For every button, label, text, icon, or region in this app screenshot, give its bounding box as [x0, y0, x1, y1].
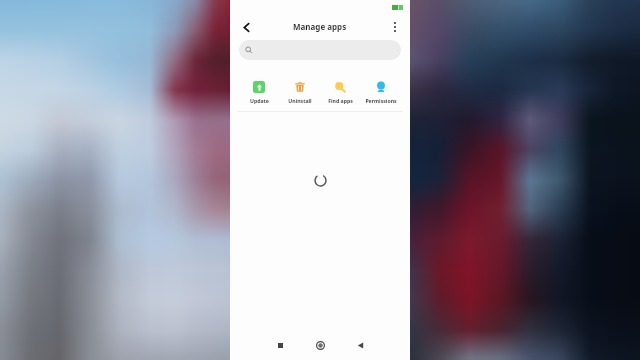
button[interactable]: Update — [241, 81, 277, 104]
button[interactable]: Find apps — [322, 81, 358, 104]
staticText: Uninstall — [288, 97, 312, 104]
button[interactable]: Back — [350, 335, 370, 355]
staticText: Find apps — [328, 97, 353, 104]
button[interactable]: Permissions — [363, 81, 399, 104]
button[interactable]: Uninstall — [282, 81, 318, 104]
button[interactable]: More options — [387, 19, 403, 35]
staticText: Manage apps — [293, 21, 347, 32]
button[interactable]: Search — [239, 40, 401, 60]
button[interactable]: Back — [238, 19, 254, 35]
button[interactable]: Home — [310, 335, 330, 355]
staticText: Permissions — [365, 97, 397, 104]
button[interactable]: Recents — [270, 335, 290, 355]
staticText: Update — [250, 97, 269, 104]
